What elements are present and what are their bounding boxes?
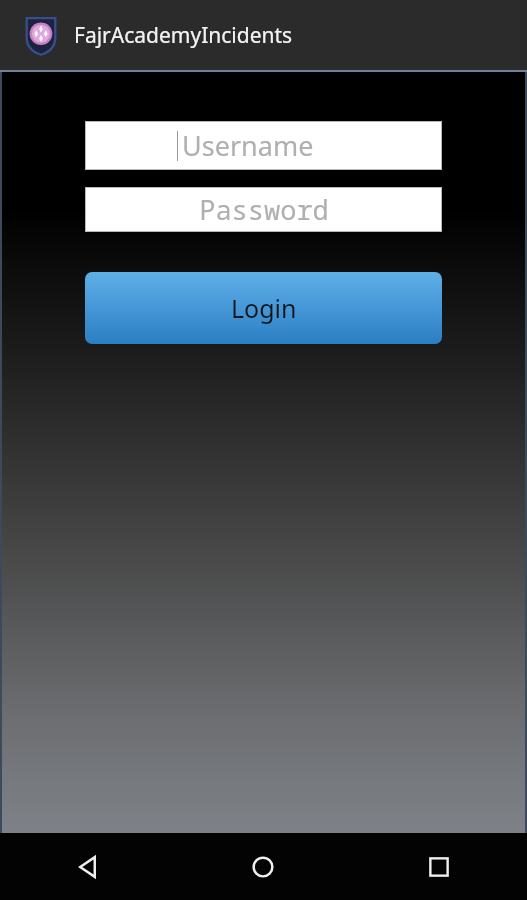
button[interactable]: Home [175,833,351,900]
staticText: Login [231,291,297,325]
staticText: Username [182,127,314,164]
staticText: FajrAcademyIncidents [74,21,293,50]
button[interactable]: Password [85,187,442,232]
button[interactable]: Login [85,272,442,344]
button[interactable]: Username [85,121,442,170]
button[interactable]: Recents [351,833,527,900]
button[interactable]: Back [0,833,175,900]
staticText: Password [199,191,329,228]
